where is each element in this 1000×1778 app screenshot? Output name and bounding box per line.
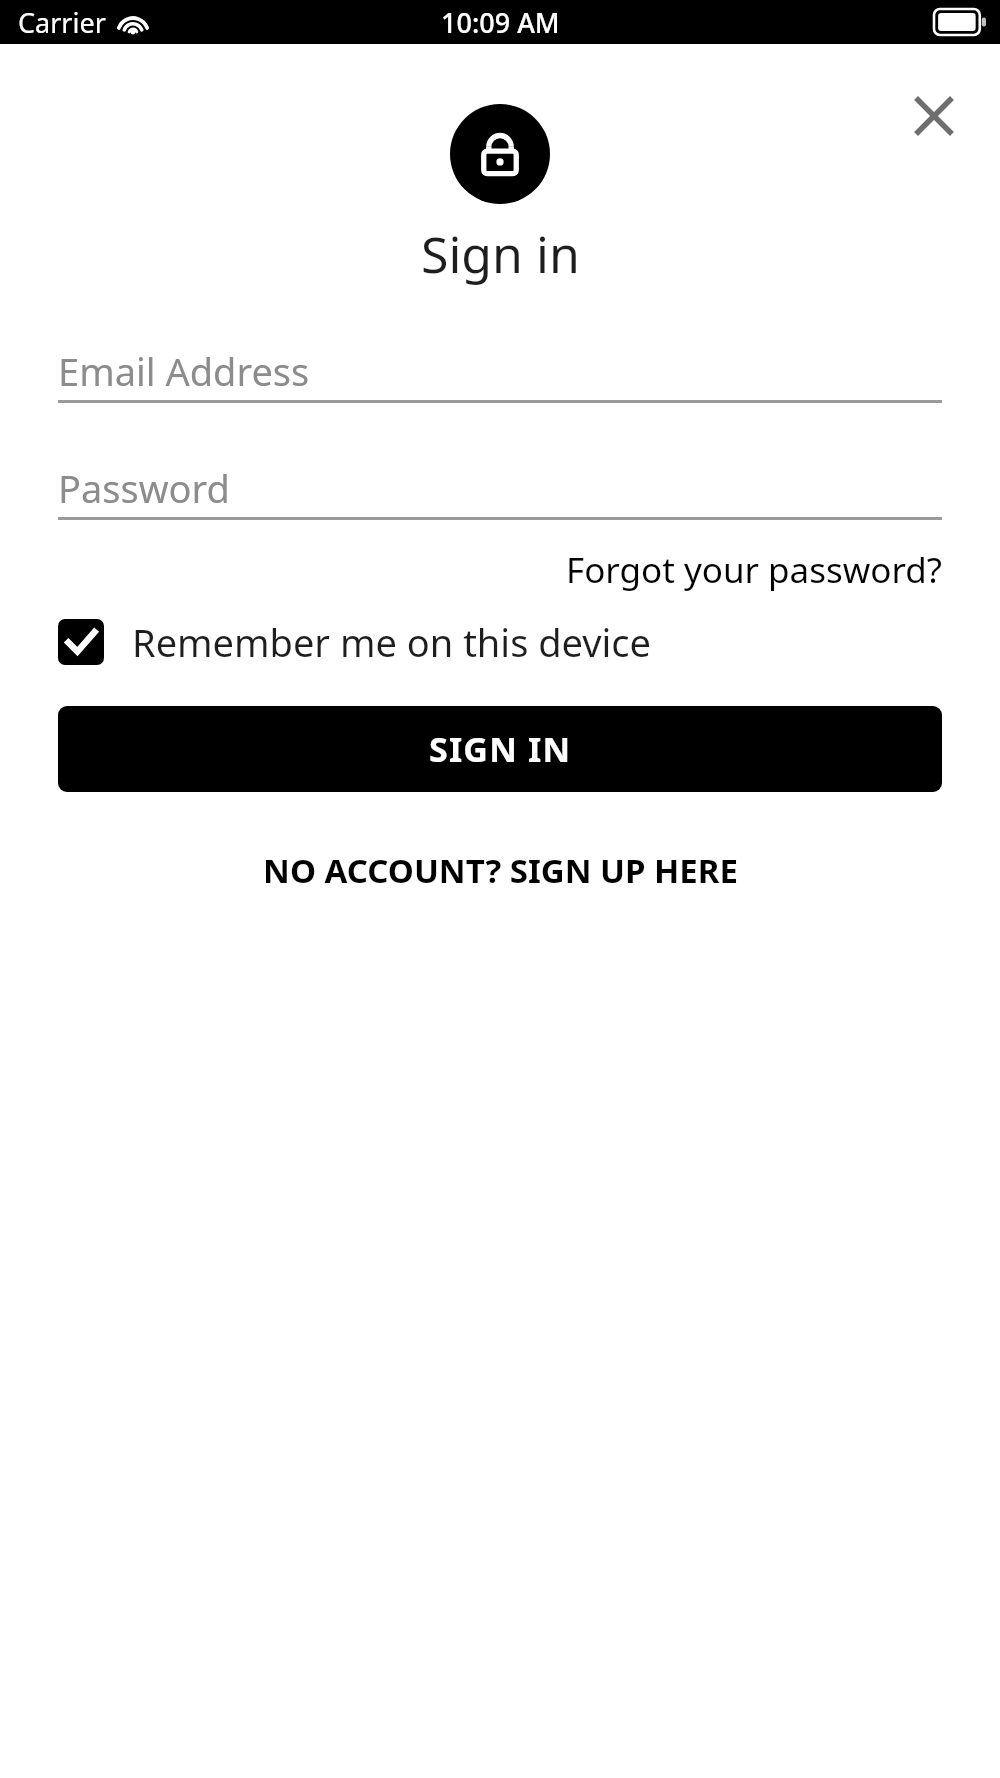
staticText: Carrier <box>18 4 106 41</box>
button[interactable]: Close <box>898 80 970 152</box>
staticText: SIGN IN <box>429 726 572 772</box>
button[interactable]: Forgot your password? <box>566 542 942 598</box>
button[interactable]: NO ACCOUNT? SIGN UP HERE <box>243 840 758 901</box>
button[interactable]: SIGN IN <box>58 706 942 792</box>
staticText: NO ACCOUNT? SIGN UP HERE <box>263 848 738 893</box>
staticText: 10:09 AM <box>441 4 560 41</box>
button[interactable]: Email Address <box>58 342 942 403</box>
staticText: Remember me on this device <box>132 616 652 668</box>
staticText: Forgot your password? <box>566 546 942 594</box>
staticText: Sign in <box>421 220 580 288</box>
staticText: Password <box>58 462 230 514</box>
button[interactable]: Password <box>58 459 942 520</box>
staticText: Email Address <box>58 345 310 397</box>
button[interactable]: Remember me on this device <box>58 616 942 668</box>
